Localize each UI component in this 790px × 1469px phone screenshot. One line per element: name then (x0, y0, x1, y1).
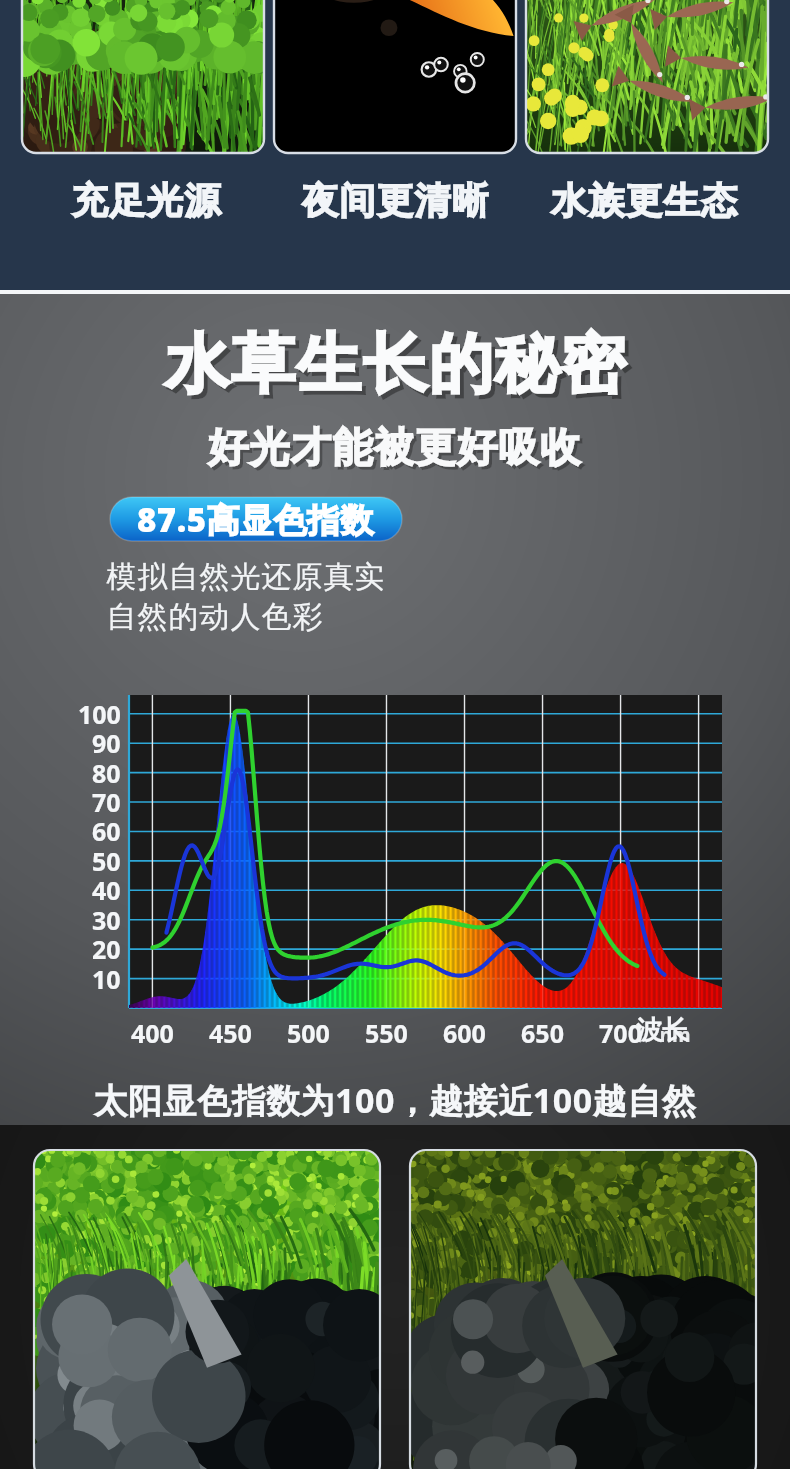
button[interactable]: Aquarium LED light product detail (0, 0, 790, 1469)
